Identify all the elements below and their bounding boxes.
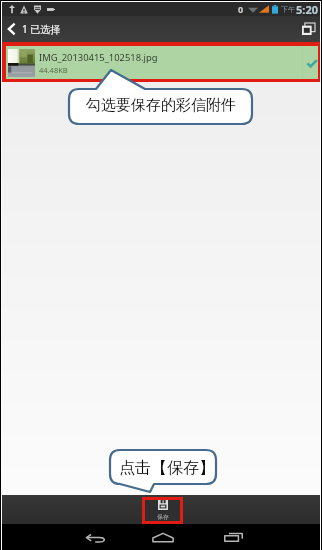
staticText: 1 已选择 <box>22 22 61 36</box>
staticText: 0 <box>238 3 244 15</box>
button[interactable]: Home <box>139 524 187 550</box>
staticText: 5:20 <box>296 2 318 16</box>
button[interactable]: Recents <box>209 524 257 550</box>
button[interactable]: 保存 <box>145 500 180 521</box>
button[interactable]: IMG_20130415_102518.jpg <box>6 46 318 79</box>
staticText: 44.48KB <box>39 65 68 75</box>
staticText: 下午 <box>281 5 295 14</box>
button[interactable]: Back <box>2 16 69 42</box>
staticText: 点击【保存】 <box>119 458 215 478</box>
staticText: 勾选要保存的彩信附件 <box>86 96 236 115</box>
button[interactable]: Back <box>72 524 120 550</box>
staticText: IMG_20130415_102518.jpg <box>39 51 158 64</box>
other: Back <box>8 23 15 35</box>
staticText: 保存 <box>157 513 169 521</box>
button[interactable]: Select all <box>296 16 320 42</box>
